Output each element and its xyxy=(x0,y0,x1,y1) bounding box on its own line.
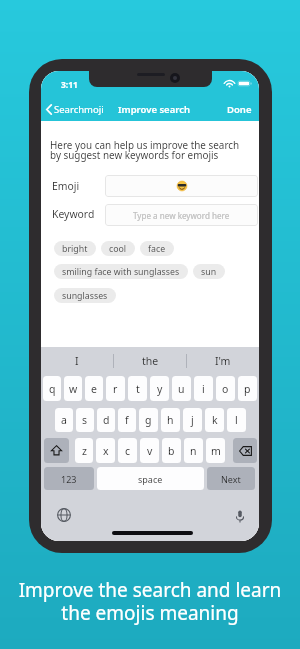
staticText: w xyxy=(69,382,78,396)
button[interactable]: face xyxy=(140,241,174,256)
button[interactable]: c xyxy=(118,438,137,463)
staticText: 3:11 xyxy=(61,79,78,91)
staticText: d xyxy=(103,413,110,427)
button[interactable]: y xyxy=(150,376,169,401)
staticText: Searchmoji xyxy=(54,103,104,116)
staticText: b xyxy=(168,444,175,458)
staticText: the xyxy=(142,354,159,368)
button[interactable]: Backspace xyxy=(233,438,257,463)
button[interactable]: Done xyxy=(223,100,259,119)
staticText: Type a new keyword here xyxy=(133,210,230,221)
button[interactable]: 123 xyxy=(44,467,94,490)
button[interactable] xyxy=(105,175,258,197)
button[interactable]: h xyxy=(161,408,180,432)
staticText: m xyxy=(211,444,221,458)
staticText: cool xyxy=(109,243,127,255)
staticText: Improve search xyxy=(118,103,190,116)
button[interactable]: Type a new keyword here xyxy=(105,204,258,226)
button[interactable]: I xyxy=(41,347,113,375)
button[interactable]: I'm xyxy=(187,347,259,375)
button[interactable]: b xyxy=(162,438,181,463)
staticText: n xyxy=(190,444,197,458)
staticText: i xyxy=(202,382,205,396)
staticText: l xyxy=(235,413,238,427)
staticText: a xyxy=(61,413,67,427)
staticText: k xyxy=(212,413,218,427)
staticText: e xyxy=(91,382,97,396)
button[interactable]: o xyxy=(216,376,235,401)
button[interactable]: e xyxy=(85,376,103,401)
staticText: I'm xyxy=(215,354,231,368)
button[interactable]: x xyxy=(96,438,115,463)
button[interactable]: the xyxy=(114,347,186,375)
staticText: Emoji xyxy=(52,179,80,193)
button[interactable]: Shift xyxy=(44,438,69,463)
button[interactable]: u xyxy=(172,376,191,401)
button[interactable]: w xyxy=(64,376,82,401)
button[interactable]: q xyxy=(43,376,61,401)
button[interactable]: t xyxy=(128,376,147,401)
button[interactable]: d xyxy=(97,408,115,432)
staticText: z xyxy=(82,444,87,458)
staticText: y xyxy=(157,382,163,396)
staticText: h xyxy=(167,413,174,427)
staticText: r xyxy=(113,382,118,396)
button[interactable]: r xyxy=(106,376,125,401)
staticText: o xyxy=(222,382,229,396)
staticText: Here you can help us improve the search … xyxy=(50,138,240,162)
staticText: c xyxy=(125,444,131,458)
staticText: q xyxy=(49,382,56,396)
button[interactable]: s xyxy=(76,408,94,432)
staticText: Improve the search and learn the emojis … xyxy=(0,577,300,626)
staticText: f xyxy=(125,413,129,427)
staticText: Keyword xyxy=(52,207,95,221)
staticText: 123 xyxy=(61,473,77,485)
button[interactable]: bright xyxy=(54,241,96,256)
button[interactable]: p xyxy=(238,376,257,401)
staticText: sun xyxy=(201,266,217,278)
button[interactable]: sun xyxy=(193,264,225,279)
button[interactable]: k xyxy=(205,408,224,432)
staticText: p xyxy=(244,382,251,396)
staticText: s xyxy=(82,413,88,427)
button[interactable]: Searchmoji xyxy=(41,100,108,119)
button[interactable]: Change keyboard xyxy=(54,505,74,525)
staticText: smiling face with sunglasses xyxy=(62,266,180,278)
button[interactable]: z xyxy=(75,438,93,463)
button[interactable]: a xyxy=(55,408,73,432)
button[interactable]: cool xyxy=(101,241,135,256)
staticText: t xyxy=(136,382,140,396)
button[interactable]: f xyxy=(118,408,136,432)
staticText: g xyxy=(145,413,152,427)
staticText: I xyxy=(75,354,79,368)
button[interactable]: v xyxy=(140,438,159,463)
button[interactable]: n xyxy=(184,438,203,463)
button[interactable]: g xyxy=(139,408,158,432)
staticText: v xyxy=(147,444,153,458)
button[interactable]: Voice input xyxy=(230,506,250,526)
staticText: sunglasses xyxy=(62,290,108,302)
staticText: bright xyxy=(62,243,88,255)
staticText: Next xyxy=(221,473,241,485)
button[interactable]: i xyxy=(194,376,213,401)
button[interactable]: sunglasses xyxy=(54,288,116,303)
staticText: face xyxy=(148,243,166,255)
button[interactable]: l xyxy=(227,408,246,432)
staticText: space xyxy=(138,473,163,485)
staticText: j xyxy=(191,413,194,427)
button[interactable]: m xyxy=(206,438,225,463)
staticText: u xyxy=(178,382,185,396)
staticText: x xyxy=(103,444,109,458)
button[interactable]: j xyxy=(183,408,202,432)
button[interactable]: Next xyxy=(207,467,255,490)
button[interactable]: space xyxy=(97,467,204,490)
button[interactable]: smiling face with sunglasses xyxy=(54,264,188,279)
